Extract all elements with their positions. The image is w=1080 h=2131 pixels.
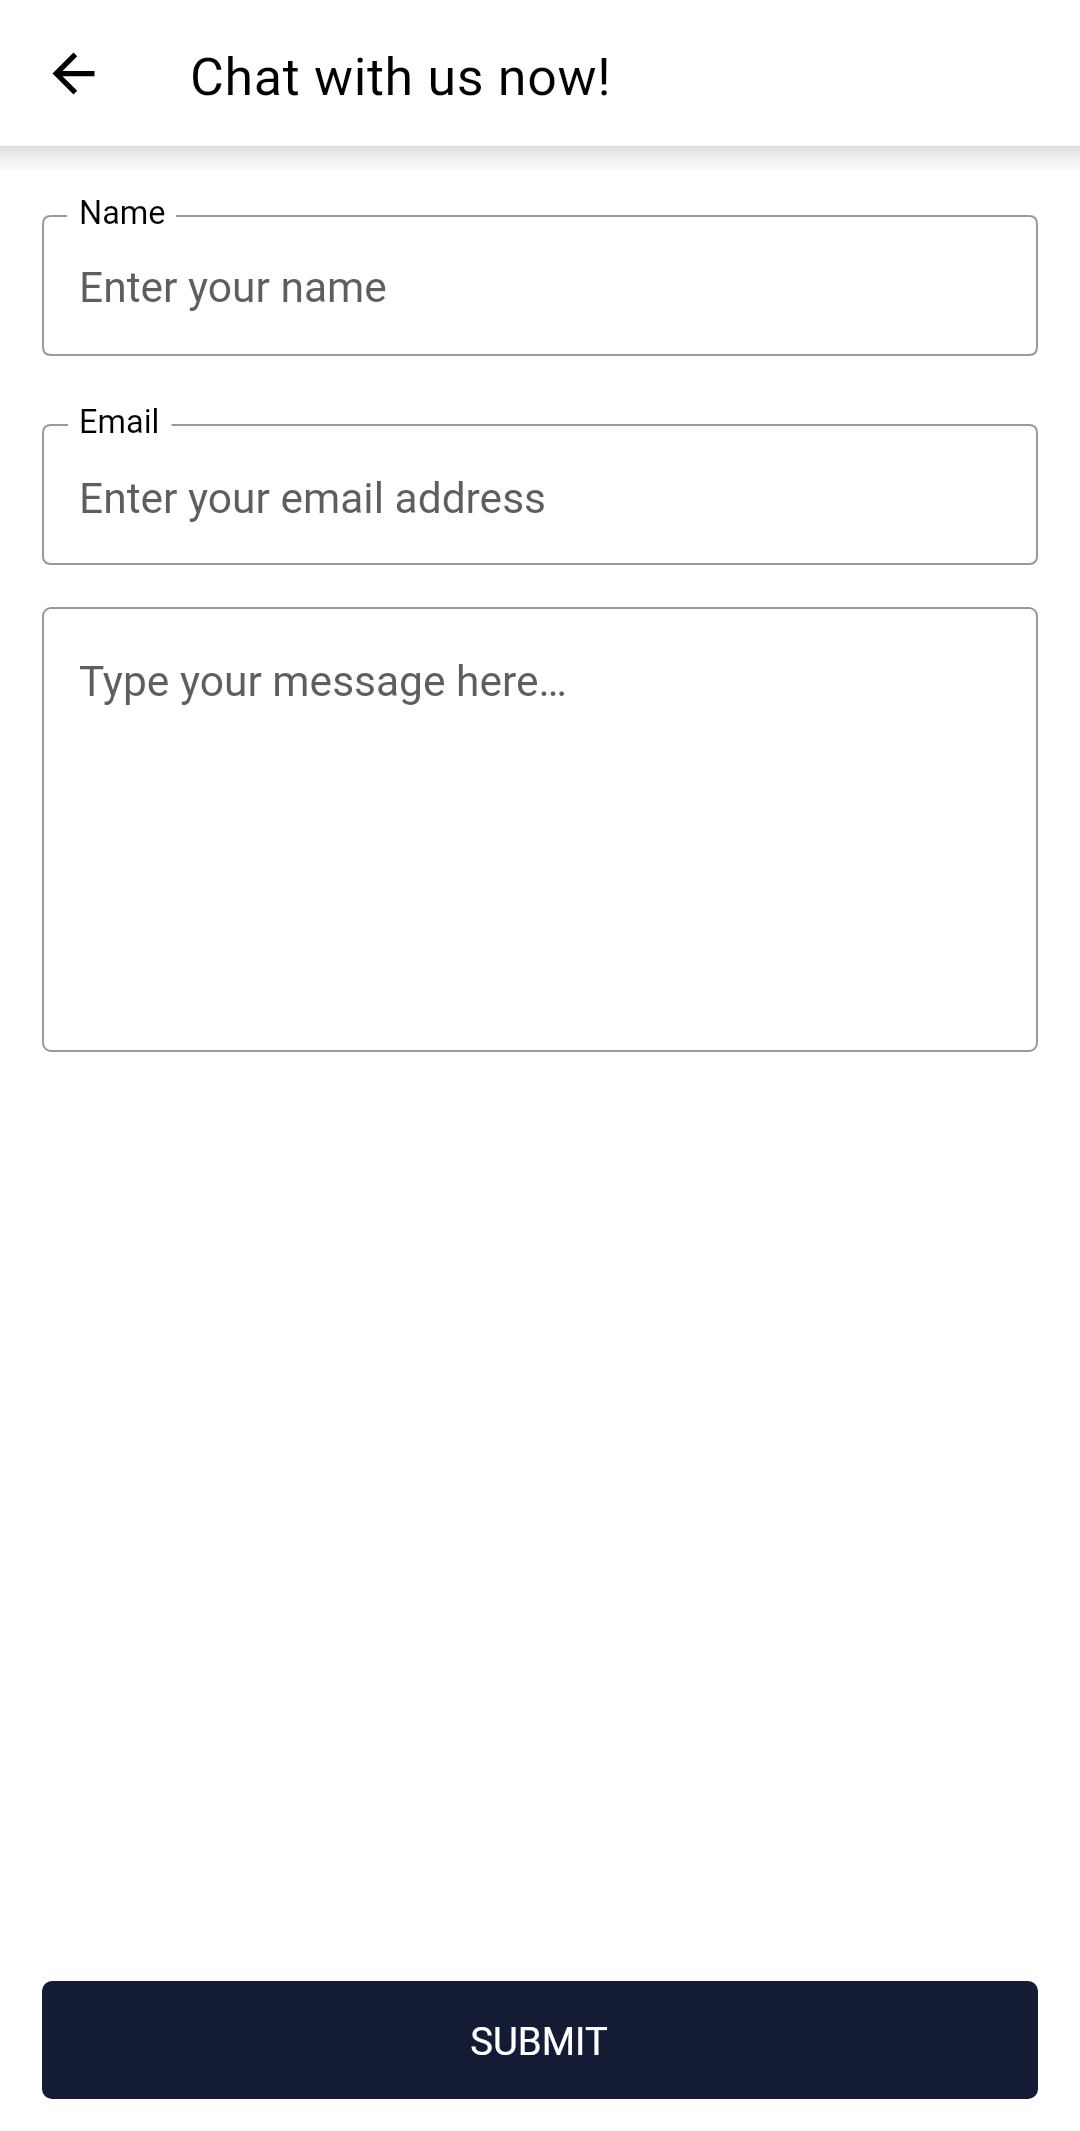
staticText: Name xyxy=(79,194,166,232)
button[interactable]: Enter your name xyxy=(42,215,1038,356)
button[interactable]: Type your message here… xyxy=(42,607,1038,1052)
staticText: Email xyxy=(79,403,160,441)
button[interactable]: SUBMIT xyxy=(42,1981,1038,2099)
staticText: SUBMIT xyxy=(470,2019,608,2064)
button[interactable]: Enter your email address xyxy=(42,424,1038,565)
button[interactable]: Back xyxy=(42,42,105,105)
staticText: Type your message here… xyxy=(79,657,567,707)
staticText: Enter your email address xyxy=(79,474,547,524)
staticText: Chat with us now! xyxy=(190,47,612,108)
staticText: Enter your name xyxy=(79,263,387,313)
